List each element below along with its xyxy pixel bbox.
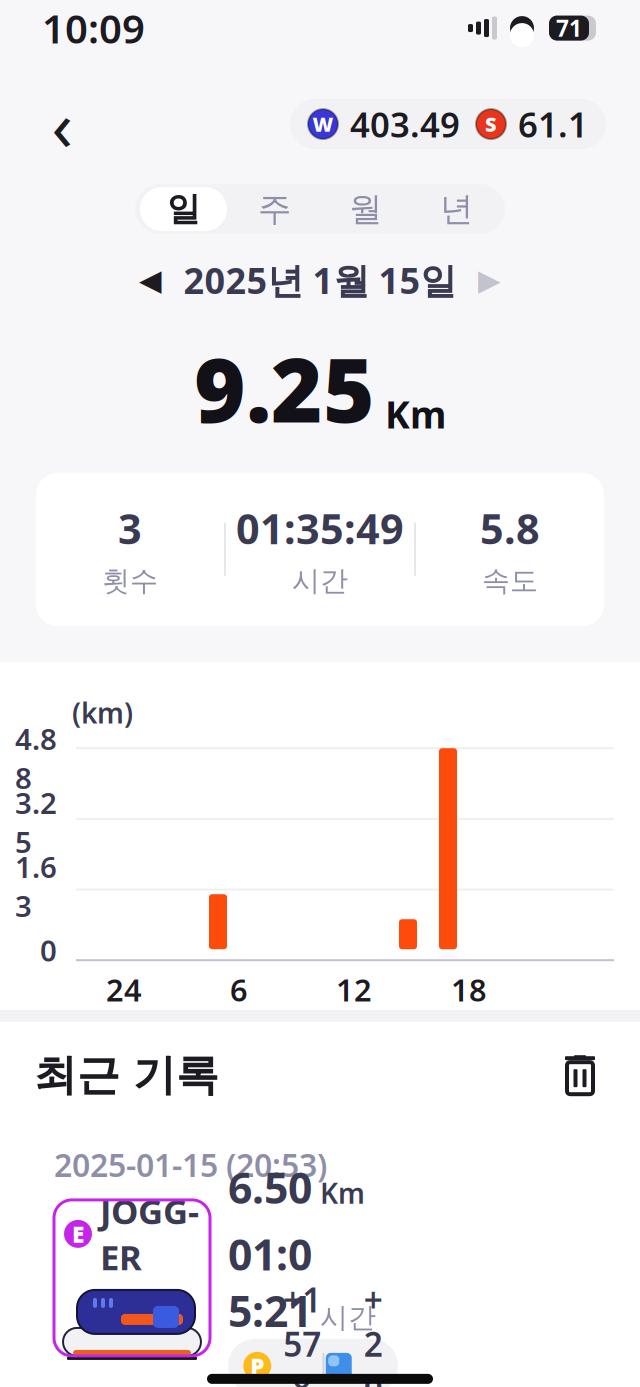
staticText: Km — [320, 1174, 365, 1212]
staticText: 횟수 — [102, 564, 158, 598]
staticText: 0 — [40, 931, 57, 970]
staticText: 4.88 — [15, 719, 57, 797]
button[interactable]: Previous day — [125, 258, 175, 302]
staticText: ‹ — [51, 78, 72, 170]
staticText: 01:35:49 — [236, 501, 404, 556]
button[interactable]: Wallet balance — [290, 99, 606, 149]
staticText: 71 — [556, 13, 582, 43]
staticText: 주 — [258, 189, 291, 229]
staticText: 월 — [349, 189, 382, 229]
staticText: S — [485, 111, 497, 137]
staticText: 시간 — [320, 1300, 376, 1335]
staticText: 403.49 — [350, 101, 460, 147]
staticText: 24 — [106, 969, 142, 1010]
button[interactable]: 2025-01-15 (20:53) — [36, 1125, 604, 1374]
staticText: 61.1 — [518, 101, 588, 147]
staticText: 3 — [118, 501, 142, 556]
staticText: 3.25 — [15, 783, 57, 861]
staticText: 9.25 — [194, 330, 375, 447]
staticText: W — [312, 111, 333, 137]
staticText: 12 — [336, 969, 372, 1010]
staticText: JOGGER — [100, 1188, 199, 1280]
staticText: Km — [385, 389, 446, 439]
staticText: ◀ — [139, 263, 162, 297]
button[interactable]: 년 — [411, 187, 502, 231]
staticText: 6.50 — [228, 1159, 312, 1216]
staticText: ▶ — [478, 263, 501, 297]
staticText: 5.8 — [480, 501, 540, 556]
staticText: 10:09 — [42, 1, 145, 55]
staticText: +201 — [364, 1277, 383, 1387]
staticText: E — [72, 1219, 84, 1249]
staticText: 2025년 1월 15일 — [183, 256, 456, 304]
staticText: 01:05:21 — [228, 1225, 312, 1339]
staticText: 일 — [167, 189, 200, 229]
button[interactable]: 월 — [320, 187, 411, 231]
staticText: 1.63 — [15, 847, 57, 925]
button[interactable]: Delete records — [554, 1049, 606, 1101]
staticText: 속도 — [482, 564, 538, 598]
button[interactable]: Next day — [464, 258, 514, 302]
staticText: +157.82 — [283, 1277, 321, 1387]
staticText: 시간 — [292, 564, 348, 598]
button[interactable]: Back — [34, 96, 90, 152]
button[interactable]: 주 — [229, 187, 320, 231]
staticText: 년 — [440, 189, 473, 229]
staticText: 18 — [451, 969, 487, 1010]
staticText: P — [250, 1351, 264, 1381]
staticText: 6 — [230, 969, 248, 1010]
staticText: (km) — [72, 694, 133, 731]
button[interactable]: 일 — [138, 187, 229, 231]
staticText: 최근 기록 — [34, 1049, 219, 1101]
staticText: 2025-01-15 (20:53) — [54, 1143, 327, 1186]
